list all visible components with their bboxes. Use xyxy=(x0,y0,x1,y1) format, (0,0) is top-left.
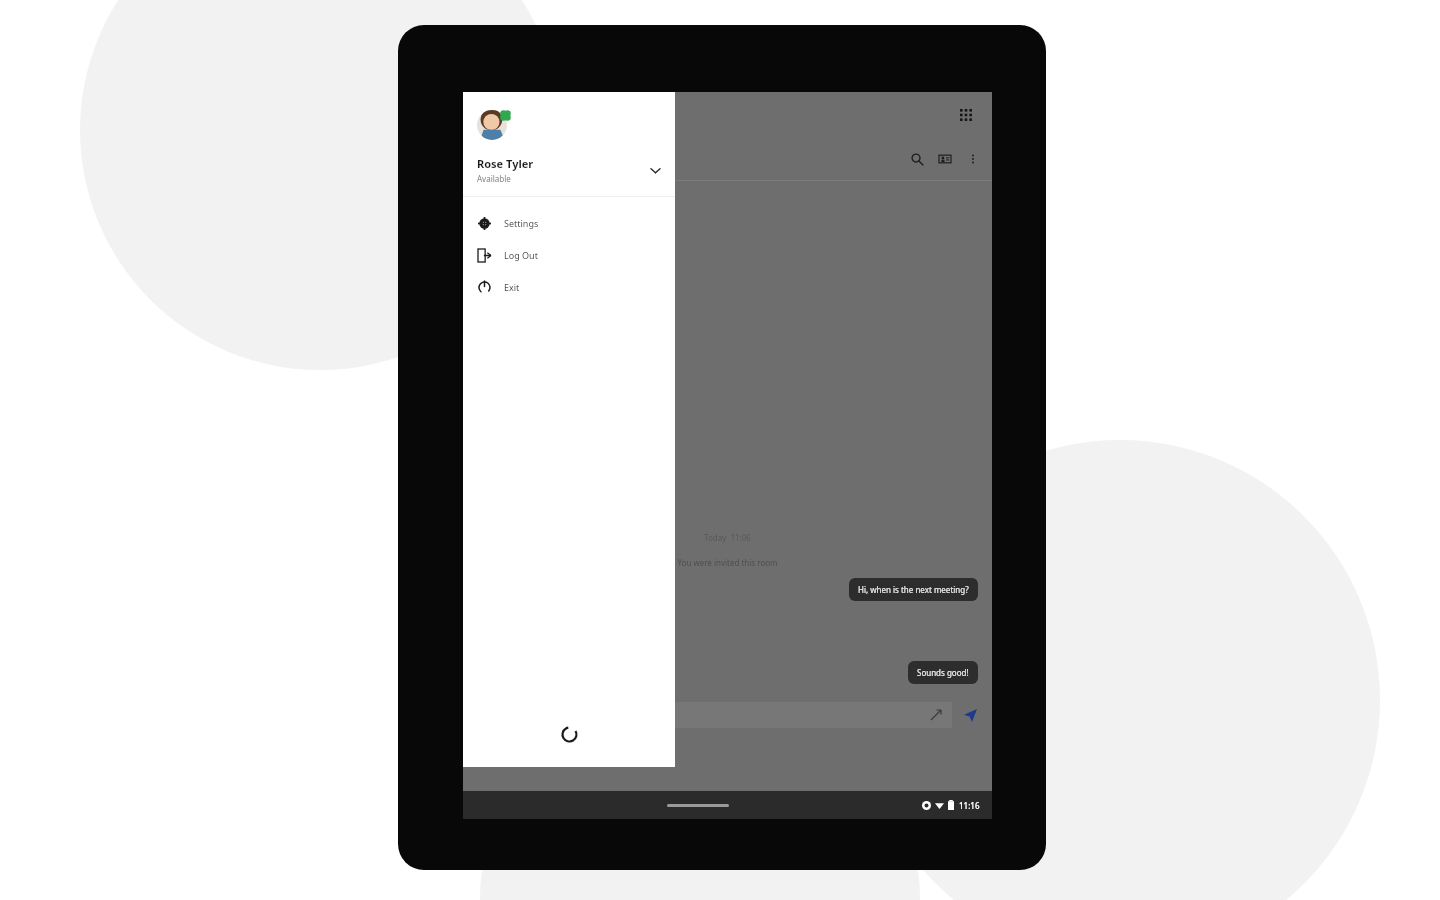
staticText: Sounds good! xyxy=(917,667,969,678)
staticText: Settings xyxy=(504,217,539,229)
button[interactable]: Home xyxy=(667,804,729,807)
button[interactable]: Search xyxy=(473,150,491,168)
staticText: Rose Tyler xyxy=(477,156,534,171)
button[interactable]: Back xyxy=(505,150,523,168)
button[interactable]: Dialpad xyxy=(954,103,978,127)
button[interactable]: Sounds good! xyxy=(908,661,978,684)
button[interactable]: Settings xyxy=(463,207,675,239)
staticText: Exit xyxy=(504,281,520,293)
button[interactable]: Hi, when is the next meeting? xyxy=(849,578,978,601)
staticText: Phone Ready xyxy=(477,109,534,121)
staticText: Log Out xyxy=(504,249,538,261)
button[interactable]: Expand xyxy=(928,707,944,723)
staticText: Hi, when is the next meeting? xyxy=(858,584,969,595)
button[interactable]: Send xyxy=(960,705,980,725)
button[interactable]: Rose Tyler xyxy=(463,156,675,184)
button[interactable]: Contact card xyxy=(936,150,954,168)
button[interactable]: Log Out xyxy=(463,239,675,271)
button[interactable]: Search messages xyxy=(908,150,926,168)
staticText: 11:16 xyxy=(959,800,980,811)
staticText: You were invited this room xyxy=(477,557,978,568)
staticText: Today 11:06 xyxy=(477,532,978,543)
button[interactable]: Exit xyxy=(463,271,675,303)
staticText: Available xyxy=(477,173,511,184)
button[interactable]: More options xyxy=(964,150,982,168)
button[interactable]: Compose Message xyxy=(523,702,952,728)
